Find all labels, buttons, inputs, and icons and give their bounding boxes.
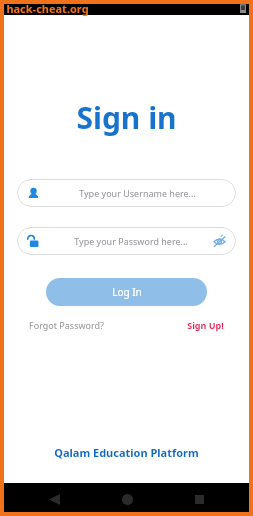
button[interactable]: Recent apps [180, 483, 218, 516]
button[interactable]: Sign Up! [185, 317, 226, 333]
button[interactable]: Type your Username here... [17, 179, 236, 207]
staticText: Log In [112, 285, 142, 299]
staticText: hack-cheat.org [6, 1, 89, 16]
staticText: Type your Username here... [49, 187, 226, 199]
button[interactable]: Home [108, 483, 146, 516]
button[interactable]: Toggle password visibility [213, 235, 226, 248]
staticText: Sign in [76, 97, 177, 138]
button[interactable]: Back [35, 483, 73, 516]
staticText: Forgot Password? [29, 319, 104, 331]
button[interactable]: Log In [46, 278, 207, 306]
staticText: Type your Password here... [49, 235, 213, 247]
button[interactable]: Type your Password here... [17, 227, 236, 255]
button[interactable]: Forgot Password? [27, 317, 106, 333]
staticText: Qalam Education Platform [54, 445, 199, 460]
staticText: Sign Up! [187, 319, 224, 331]
